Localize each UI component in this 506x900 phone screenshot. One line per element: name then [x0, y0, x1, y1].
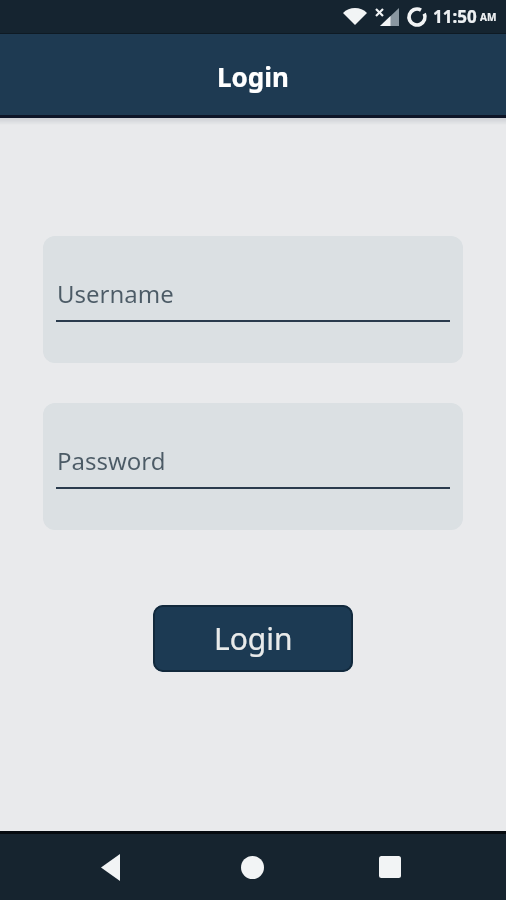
staticText: Login: [214, 618, 293, 659]
button[interactable]: [370, 847, 410, 887]
staticText: AM: [480, 10, 497, 24]
button[interactable]: Password: [43, 403, 463, 530]
button[interactable]: Login: [153, 605, 353, 672]
button[interactable]: Username: [43, 236, 463, 363]
button[interactable]: [90, 847, 130, 887]
staticText: Password: [57, 444, 166, 477]
staticText: Username: [57, 277, 174, 310]
staticText: Login: [217, 59, 289, 94]
button[interactable]: [232, 847, 272, 887]
staticText: 11:50: [433, 5, 477, 28]
